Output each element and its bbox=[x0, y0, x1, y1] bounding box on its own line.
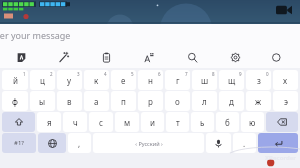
staticText: д bbox=[229, 96, 234, 107]
staticText: о bbox=[175, 96, 180, 107]
button[interactable]: м bbox=[115, 112, 139, 132]
staticText: з bbox=[257, 75, 261, 86]
staticText: ы bbox=[39, 96, 46, 107]
button[interactable]: щ bbox=[219, 70, 244, 90]
button[interactable]: Backspace bbox=[266, 112, 298, 132]
staticText: н bbox=[148, 75, 153, 86]
staticText: ч bbox=[73, 117, 78, 128]
staticText: е bbox=[121, 75, 126, 86]
staticText: Enter your message bbox=[0, 29, 71, 41]
staticText: 2 bbox=[50, 71, 53, 77]
button[interactable]: е bbox=[111, 70, 136, 90]
button[interactable]: г bbox=[165, 70, 190, 90]
staticText: 0 bbox=[266, 71, 269, 77]
staticText: 8 bbox=[212, 71, 215, 77]
button[interactable]: н bbox=[138, 70, 163, 90]
button[interactable]: б bbox=[216, 112, 239, 132]
staticText: 6 bbox=[158, 71, 161, 77]
staticText: п bbox=[121, 96, 126, 107]
staticText: , bbox=[78, 138, 81, 149]
button[interactable]: д bbox=[219, 91, 244, 111]
button[interactable]: п bbox=[111, 91, 136, 111]
button[interactable]: с bbox=[89, 112, 113, 132]
staticText: б bbox=[225, 117, 230, 128]
button[interactable]: ю bbox=[241, 112, 264, 132]
staticText: ц bbox=[40, 75, 45, 86]
button[interactable]: , bbox=[68, 133, 91, 153]
staticText: и bbox=[150, 117, 155, 128]
staticText: 7 bbox=[185, 71, 188, 77]
button[interactable]: ж bbox=[246, 91, 271, 111]
button[interactable]: Voice input bbox=[206, 133, 231, 153]
button[interactable]: Settings bbox=[214, 46, 257, 68]
staticText: ь bbox=[200, 117, 205, 128]
staticText: р bbox=[148, 96, 153, 107]
staticText: г bbox=[176, 75, 180, 86]
button[interactable]: о bbox=[165, 91, 190, 111]
button[interactable]: Video call bbox=[276, 4, 292, 16]
staticText: к bbox=[94, 75, 99, 86]
button[interactable]: #1? bbox=[2, 133, 36, 153]
button[interactable]: э bbox=[273, 91, 298, 111]
button[interactable]: Shift bbox=[2, 112, 35, 132]
staticText: ю bbox=[249, 117, 256, 128]
staticText: а bbox=[94, 96, 99, 107]
button[interactable]: т bbox=[166, 112, 189, 132]
staticText: 9 bbox=[239, 71, 242, 77]
button[interactable]: и bbox=[141, 112, 164, 132]
button[interactable]: л bbox=[192, 91, 217, 111]
staticText: щ bbox=[228, 75, 236, 86]
button[interactable]: х bbox=[273, 70, 298, 90]
button[interactable]: ь bbox=[191, 112, 214, 132]
staticText: т bbox=[176, 117, 180, 128]
staticText: л bbox=[202, 96, 207, 107]
button[interactable]: More bbox=[257, 46, 300, 68]
staticText: м bbox=[124, 117, 131, 128]
button[interactable]: в bbox=[57, 91, 82, 111]
staticText: 5 bbox=[131, 71, 134, 77]
button[interactable]: р bbox=[138, 91, 163, 111]
staticText: я bbox=[47, 117, 52, 128]
button[interactable]: Enter your message bbox=[0, 24, 300, 46]
button[interactable]: й bbox=[2, 70, 28, 90]
staticText: й bbox=[13, 75, 18, 86]
button[interactable]: з bbox=[246, 70, 271, 90]
button[interactable]: Change language bbox=[38, 133, 66, 153]
button[interactable]: Search bbox=[171, 46, 214, 68]
button[interactable]: ч bbox=[63, 112, 87, 132]
staticText: х bbox=[283, 75, 288, 86]
staticText: ж bbox=[255, 96, 262, 107]
staticText: у bbox=[67, 75, 72, 86]
button[interactable]: ф bbox=[2, 91, 28, 111]
button[interactable]: я bbox=[37, 112, 61, 132]
button[interactable]: ‹ Русский › bbox=[93, 133, 204, 153]
staticText: э bbox=[284, 96, 288, 107]
staticText: 1 bbox=[23, 71, 26, 77]
staticText: ш bbox=[201, 75, 209, 86]
staticText: 4 bbox=[104, 71, 107, 77]
button[interactable]: у bbox=[57, 70, 82, 90]
staticText: ‹ Русский › bbox=[135, 140, 163, 147]
staticText: 3 bbox=[77, 71, 80, 77]
button[interactable]: а bbox=[84, 91, 109, 111]
button[interactable]: к bbox=[84, 70, 109, 90]
staticText: в bbox=[67, 96, 72, 107]
button[interactable]: Magic compose bbox=[42, 46, 85, 68]
button[interactable]: Clipboard bbox=[85, 46, 128, 68]
button[interactable]: Translate bbox=[128, 46, 171, 68]
staticText: XRecorder bbox=[265, 154, 297, 162]
staticText: #1? bbox=[14, 139, 24, 147]
button[interactable]: . bbox=[233, 133, 256, 153]
staticText: ф bbox=[12, 96, 18, 107]
staticText: с bbox=[99, 117, 103, 128]
button[interactable]: ц bbox=[30, 70, 55, 90]
button[interactable]: Stickers bbox=[0, 46, 42, 68]
button[interactable]: ш bbox=[192, 70, 217, 90]
button[interactable]: ы bbox=[30, 91, 55, 111]
staticText: . bbox=[243, 138, 246, 149]
button[interactable]: Enter bbox=[258, 133, 298, 153]
